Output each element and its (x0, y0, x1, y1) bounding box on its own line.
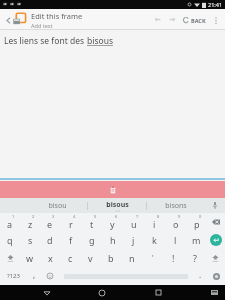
button[interactable]: Move right (167, 14, 178, 25)
staticText: m (192, 234, 201, 246)
staticText: z (28, 218, 33, 230)
button[interactable]: Navigate up (3, 15, 13, 25)
staticText: BACK (191, 17, 206, 24)
staticText: ? (193, 252, 197, 264)
button[interactable]: h (102, 231, 123, 249)
button[interactable]: ! (163, 249, 184, 267)
button[interactable]: BACK (181, 16, 207, 24)
button[interactable]: More options (210, 14, 222, 26)
staticText: w (26, 252, 34, 264)
staticText: Les liens se font des (4, 35, 87, 47)
button[interactable]: g (81, 231, 102, 249)
button[interactable]: d (40, 231, 60, 249)
staticText: 0 (199, 214, 202, 219)
button[interactable]: m (186, 231, 207, 249)
button[interactable]: Space (58, 267, 193, 285)
button[interactable]: Recent apps (150, 285, 166, 300)
button[interactable]: Move left (152, 14, 163, 25)
button[interactable]: Hide keyboard (206, 285, 222, 300)
button[interactable]: 6 (102, 213, 123, 231)
staticText: 5 (94, 214, 97, 219)
button[interactable]: f (60, 231, 81, 249)
staticText: o (173, 218, 179, 230)
button[interactable]: . (193, 267, 207, 285)
button[interactable]: Enter (207, 231, 225, 249)
button[interactable]: Input settings (207, 267, 225, 285)
staticText: bisou (48, 201, 67, 211)
button[interactable]: q (0, 231, 20, 249)
staticText: . (199, 269, 202, 280)
button[interactable]: Back (39, 285, 55, 300)
button[interactable]: 2 (20, 213, 40, 231)
staticText: p (194, 218, 200, 230)
staticText: j (132, 234, 135, 246)
button[interactable]: n (121, 249, 142, 267)
staticText: ! (172, 252, 175, 264)
staticText: 9 (178, 214, 181, 219)
staticText: u (131, 218, 137, 230)
button[interactable]: v (80, 249, 100, 267)
staticText: 21:41 (208, 1, 223, 8)
button[interactable]: bisou (28, 198, 87, 213)
button[interactable]: 8 (144, 213, 165, 231)
button[interactable]: 9 (165, 213, 186, 231)
button[interactable]: 3 (40, 213, 60, 231)
button[interactable]: App icon (13, 12, 28, 27)
button[interactable]: k (144, 231, 165, 249)
staticText: bisous (87, 35, 113, 47)
staticText: 3 (52, 214, 55, 219)
staticText: q (7, 234, 13, 246)
button[interactable]: , (26, 267, 42, 285)
staticText: c (68, 252, 73, 264)
button[interactable]: s (20, 231, 40, 249)
staticText: n (129, 252, 135, 264)
button[interactable]: Backspace (207, 213, 225, 231)
staticText: 4 (73, 214, 76, 219)
staticText: x (48, 252, 53, 264)
staticText: g (89, 234, 95, 246)
button[interactable]: x (40, 249, 60, 267)
staticText: v (88, 252, 93, 264)
button[interactable]: ?123 (0, 267, 26, 285)
staticText: a (7, 218, 13, 230)
staticText: r (69, 218, 73, 230)
button[interactable]: 0 (186, 213, 207, 231)
button[interactable]: bisous (88, 198, 146, 213)
staticText: b (108, 252, 114, 264)
staticText: 7 (136, 214, 139, 219)
button[interactable]: c (60, 249, 80, 267)
button[interactable]: Home (94, 285, 110, 300)
staticText: y (110, 218, 115, 230)
button[interactable]: Shift (205, 249, 225, 267)
button[interactable]: Shift (0, 249, 20, 267)
staticText: e (47, 218, 53, 230)
staticText: bisous (106, 200, 129, 210)
button[interactable]: bisons (147, 198, 205, 213)
button[interactable]: 7 (123, 213, 144, 231)
staticText: h (110, 234, 116, 246)
staticText: s (28, 234, 33, 246)
staticText: 1 (12, 214, 15, 219)
button[interactable]: Emoji (42, 267, 58, 285)
button[interactable]: 4 (60, 213, 81, 231)
staticText: i (153, 218, 156, 230)
staticText: ' (152, 253, 154, 263)
staticText: t (90, 218, 94, 230)
button[interactable]: Paste (0, 181, 225, 198)
staticText: bisons (165, 201, 187, 211)
button[interactable]: ' (142, 249, 163, 267)
staticText: k (152, 234, 157, 246)
staticText: l (174, 234, 177, 246)
button[interactable]: 1 (0, 213, 20, 231)
button[interactable]: w (20, 249, 40, 267)
staticText: 2 (32, 214, 35, 219)
button[interactable]: ? (184, 249, 205, 267)
button[interactable]: l (165, 231, 186, 249)
button[interactable]: 5 (81, 213, 102, 231)
button[interactable]: Voice input (205, 198, 225, 213)
button[interactable]: b (100, 249, 121, 267)
button[interactable]: j (123, 231, 144, 249)
staticText: Edit this frame (31, 11, 83, 21)
staticText: Add text (31, 22, 53, 29)
staticText: f (69, 234, 73, 246)
